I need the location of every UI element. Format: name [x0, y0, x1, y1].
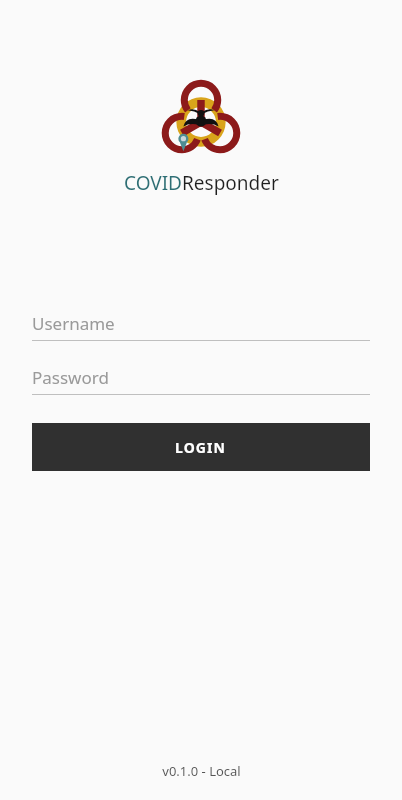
staticText: Responder — [182, 170, 279, 196]
button[interactable]: LOGIN — [32, 423, 370, 471]
button[interactable]: Password — [32, 362, 370, 395]
staticText: v0.1.0 - Local — [162, 762, 241, 780]
staticText: Username — [32, 312, 115, 335]
other: COVIDResponder logo — [149, 78, 253, 166]
staticText: COVID — [124, 170, 182, 196]
staticText: LOGIN — [175, 438, 227, 457]
staticText: Password — [32, 366, 109, 389]
button[interactable]: Username — [32, 308, 370, 341]
